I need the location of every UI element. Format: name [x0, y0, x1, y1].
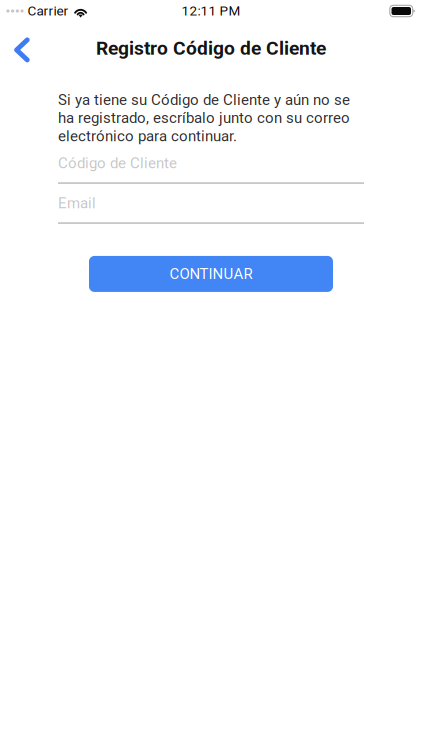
button[interactable]: Código de Cliente: [58, 144, 364, 184]
staticText: CONTINUAR: [169, 265, 252, 283]
staticText: Carrier: [27, 3, 68, 19]
staticText: Registro Código de Cliente: [96, 37, 326, 59]
staticText: Email: [58, 194, 96, 212]
staticText: 12:11 PM: [181, 3, 240, 19]
button[interactable]: CONTINUAR: [89, 256, 333, 292]
staticText: Si ya tiene su Código de Cliente y aún n…: [58, 91, 350, 145]
button[interactable]: Back: [0, 22, 40, 65]
button[interactable]: Email: [58, 184, 364, 224]
staticText: Código de Cliente: [58, 154, 177, 172]
